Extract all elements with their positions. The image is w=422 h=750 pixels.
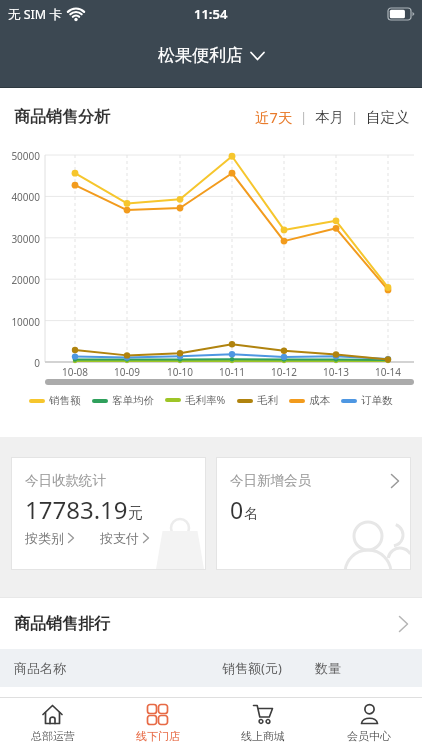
button[interactable]: 近7天: [255, 107, 293, 127]
staticText: 商品名称: [14, 660, 66, 676]
staticText: 客单均价: [112, 394, 154, 407]
button[interactable]: 本月: [315, 108, 344, 126]
staticText: 10000: [0, 315, 40, 329]
staticText: |: [351, 108, 359, 126]
staticText: 10-11: [207, 365, 257, 379]
staticText: 10-12: [259, 365, 309, 379]
staticText: 10-13: [311, 365, 361, 379]
button[interactable]: 会员中心: [316, 698, 422, 750]
staticText: 近7天: [255, 107, 293, 127]
staticText: 0: [0, 356, 40, 370]
staticText: 今日收款统计: [25, 472, 106, 489]
staticText: 17783.19: [25, 493, 128, 526]
staticText: 成本: [309, 394, 330, 407]
button[interactable]: 商品销售排行: [14, 598, 408, 649]
staticText: 10-08: [50, 365, 100, 379]
staticText: 订单数: [361, 394, 393, 407]
button[interactable]: 总部运营: [0, 698, 105, 750]
staticText: 销售额: [49, 394, 81, 407]
staticText: 名: [244, 505, 258, 523]
staticText: 毛利: [257, 394, 278, 407]
button[interactable]: 自定义: [366, 108, 410, 126]
staticText: 毛利率%: [185, 393, 226, 407]
staticText: 50000: [0, 149, 40, 163]
staticText: |: [300, 108, 308, 126]
button[interactable]: 线下门店: [105, 698, 210, 750]
staticText: 10-14: [363, 365, 413, 379]
staticText: 今日新增会员: [230, 472, 311, 489]
staticText: 10-10: [155, 365, 205, 379]
staticText: 自定义: [366, 108, 410, 126]
staticText: 销售额(元): [222, 659, 282, 677]
staticText: 数量: [315, 660, 341, 676]
staticText: 按支付: [100, 530, 139, 546]
staticText: 按类别: [25, 530, 64, 546]
staticText: 元: [128, 504, 143, 523]
staticText: 无 SIM 卡: [8, 6, 62, 23]
button[interactable]: 今日新增会员: [216, 457, 411, 570]
button[interactable]: 线上商城: [210, 698, 316, 750]
staticText: 线下门店: [136, 729, 180, 743]
staticText: 线上商城: [241, 729, 285, 743]
staticText: 0: [230, 494, 244, 525]
staticText: 商品销售排行: [14, 614, 110, 634]
staticText: 会员中心: [347, 729, 391, 743]
staticText: 总部运营: [31, 729, 75, 743]
staticText: 10-09: [102, 365, 152, 379]
staticText: 商品销售分析: [14, 107, 110, 127]
staticText: 20000: [0, 273, 40, 287]
button[interactable]: 今日收款统计: [11, 457, 206, 570]
staticText: 松果便利店: [158, 45, 243, 66]
staticText: 40000: [0, 190, 40, 204]
staticText: 30000: [0, 232, 40, 246]
staticText: 本月: [315, 108, 344, 126]
staticText: 11:54: [194, 5, 228, 23]
button[interactable]: 松果便利店: [158, 45, 264, 66]
